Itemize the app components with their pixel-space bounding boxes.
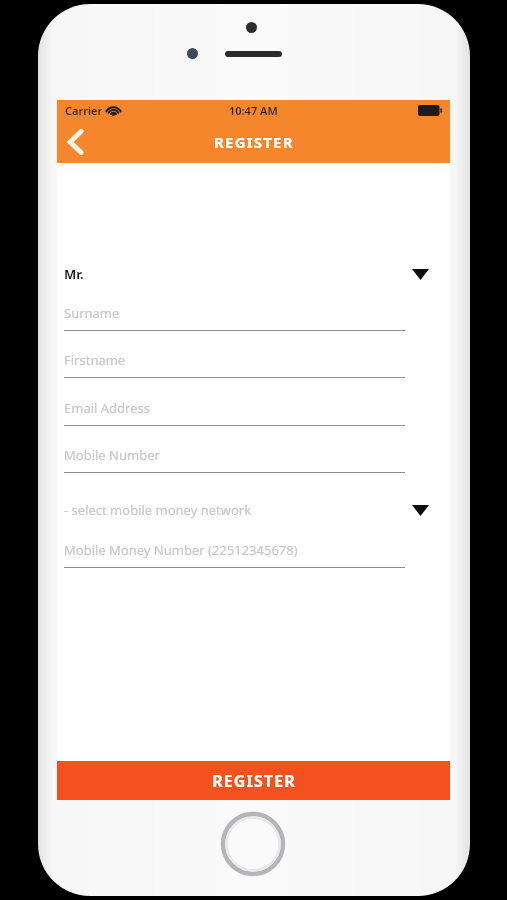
- staticText: 10:47 AM: [229, 103, 278, 118]
- staticText: REGISTER: [214, 132, 294, 152]
- button[interactable]: Mobile Number: [64, 441, 405, 479]
- button[interactable]: Email Address: [64, 394, 405, 432]
- button[interactable]: Mr.: [64, 259, 429, 289]
- button[interactable]: Mobile Money Number (22512345678): [64, 536, 405, 574]
- staticText: Email Address: [64, 399, 150, 417]
- staticText: - select mobile money network: [64, 501, 252, 519]
- button[interactable]: Firstname: [64, 346, 405, 384]
- button[interactable]: Surname: [64, 299, 405, 337]
- staticText: Mobile Number: [64, 446, 160, 464]
- staticText: Mobile Money Number (22512345678): [64, 541, 298, 559]
- staticText: REGISTER: [212, 770, 296, 792]
- button[interactable]: REGISTER: [57, 761, 450, 800]
- button[interactable]: - select mobile money network: [64, 495, 429, 525]
- other: Home: [221, 812, 285, 876]
- staticText: Firstname: [64, 351, 126, 369]
- staticText: Surname: [64, 304, 120, 322]
- staticText: Carrier: [65, 103, 103, 118]
- button[interactable]: Back: [57, 120, 101, 163]
- staticText: Mr.: [64, 265, 84, 283]
